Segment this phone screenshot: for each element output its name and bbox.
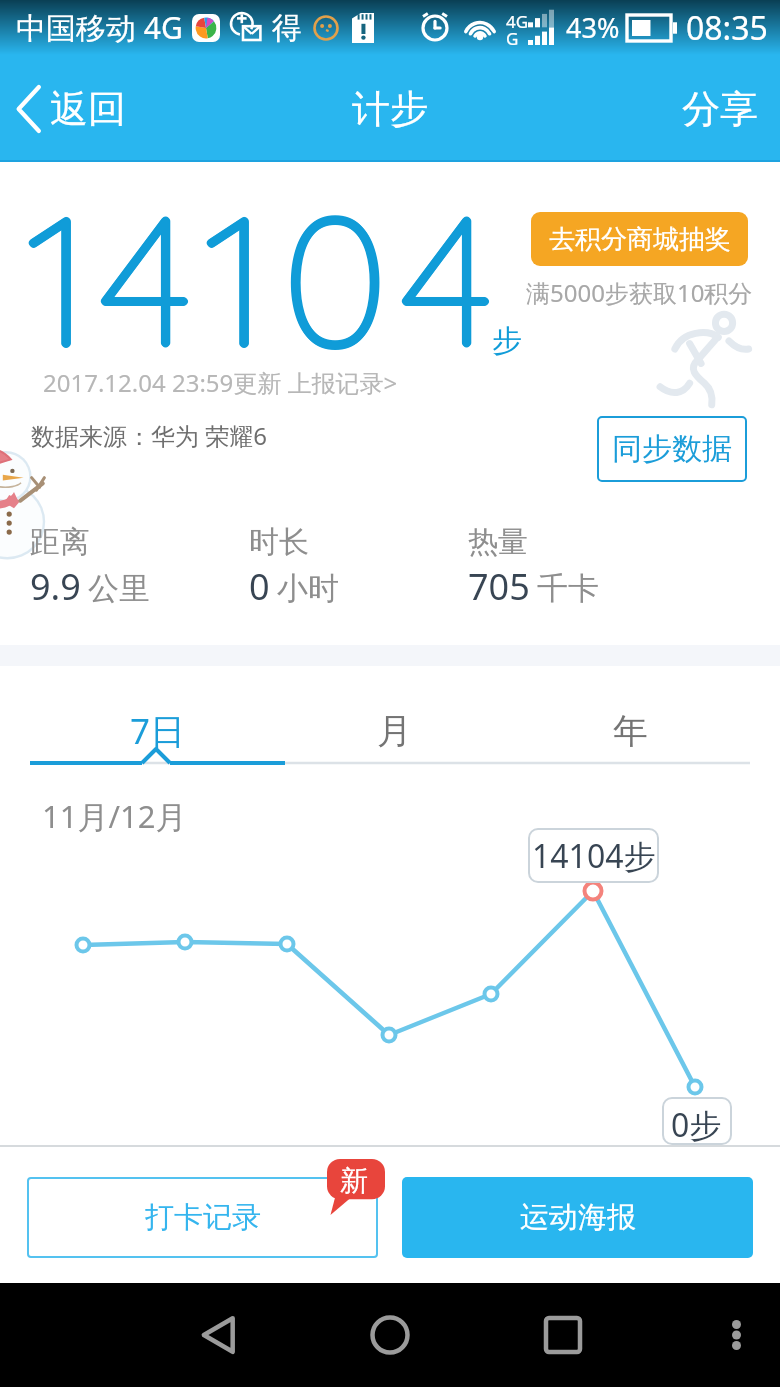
staticText: 9.9 [30, 562, 81, 611]
staticText: 4G [506, 10, 529, 33]
staticText: 14104步 [532, 834, 656, 878]
staticText: 11月/12月 [42, 795, 187, 837]
staticText: 0 [249, 562, 270, 611]
staticText: G [506, 27, 519, 50]
button[interactable]: 同步数据 [597, 416, 747, 482]
staticText: 计步 [352, 85, 428, 133]
staticText: 去积分商城抽奖 [549, 223, 731, 256]
staticText: 返回 [50, 85, 126, 133]
staticText: 14104 [26, 162, 506, 393]
staticText: 热量 [468, 523, 528, 561]
staticText: 2017.12.04 23:59更新 上报记录> [43, 366, 398, 399]
button[interactable]: 7日 [38, 695, 278, 767]
staticText: 距离 [30, 523, 90, 561]
staticText: 时长 [249, 523, 309, 561]
staticText: 7日 [130, 707, 186, 755]
staticText: 月 [377, 709, 412, 753]
staticText: 14104 [24, 162, 504, 393]
staticText: 年 [613, 709, 648, 753]
button[interactable]: Recent apps [523, 1283, 603, 1387]
staticText: 新 [340, 1163, 368, 1198]
staticText: 满5000步获取10积分 [526, 276, 753, 309]
staticText: 数据来源：华为 荣耀6 [31, 419, 267, 452]
button[interactable]: 分享 [660, 71, 780, 147]
staticText: 同步数据 [612, 430, 732, 468]
staticText: 打卡记录 [145, 1199, 261, 1236]
button[interactable]: Back [179, 1283, 259, 1387]
button[interactable]: 月 [274, 695, 514, 767]
staticText: 千卡 [537, 569, 599, 608]
staticText: 705 [468, 562, 530, 611]
button[interactable]: 打卡记录 [27, 1177, 378, 1258]
button[interactable]: Home [350, 1283, 430, 1387]
button[interactable]: 年 [510, 695, 750, 767]
staticText: 43% [566, 9, 620, 46]
button[interactable]: 运动海报 [402, 1177, 753, 1258]
button[interactable]: 2017.12.04 23:59更新 上报记录> [43, 366, 398, 399]
button[interactable]: More options [700, 1283, 772, 1387]
staticText: 08:35 [686, 6, 768, 50]
staticText: 14104 [25, 161, 505, 392]
staticText: 得 [272, 9, 302, 47]
staticText: 步 [492, 322, 522, 360]
staticText: 运动海报 [520, 1199, 636, 1236]
button[interactable]: 去积分商城抽奖 [531, 212, 748, 266]
staticText: 小时 [277, 569, 339, 608]
staticText: 分享 [682, 85, 758, 133]
staticText: 0步 [671, 1103, 722, 1147]
staticText: 14104 [25, 163, 505, 394]
staticText: 中国移动 4G [16, 7, 183, 48]
staticText: 公里 [88, 569, 150, 608]
button[interactable]: 返回 [0, 71, 148, 147]
